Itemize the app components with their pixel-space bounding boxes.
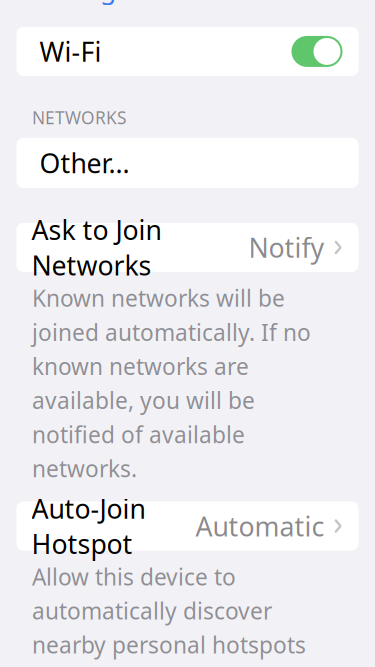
button[interactable]: Other... (0, 138, 375, 188)
button[interactable]: Ask to Join Networks (0, 223, 375, 272)
button[interactable]: Auto-Join Hotspot (0, 502, 375, 551)
staticText: Wi-Fi (39, 34, 101, 69)
staticText: Allow this device to automatically disco… (32, 562, 306, 667)
button[interactable]: Settings (0, 0, 129, 12)
staticText: NETWORKS (32, 106, 127, 129)
staticText: Ask to Join Networks (31, 212, 161, 283)
staticText: Automatic (195, 508, 324, 544)
staticText: Known networks will be joined automatica… (32, 283, 311, 484)
staticText: Auto-Join Hotspot (31, 491, 145, 561)
button[interactable]: Wi-Fi (291, 36, 342, 67)
staticText: Other... (39, 145, 129, 181)
staticText: Settings (27, 0, 129, 6)
staticText: Notify (248, 230, 324, 265)
